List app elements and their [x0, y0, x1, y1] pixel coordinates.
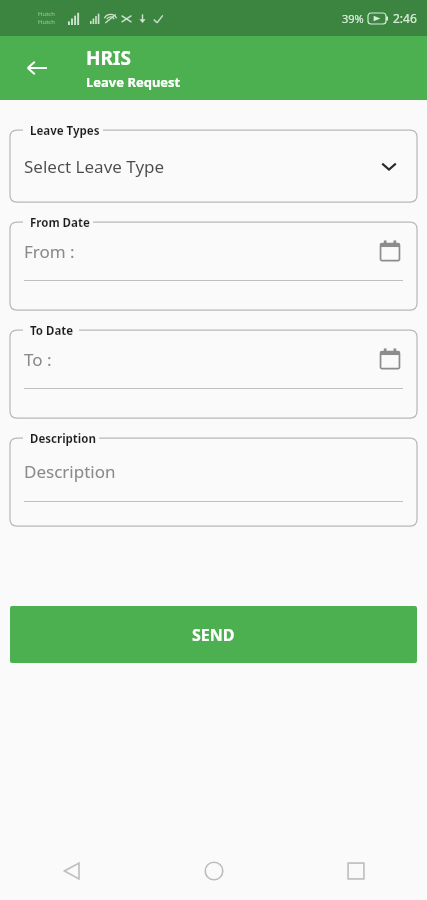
other: Pick from date [379, 240, 401, 262]
button[interactable]: Home [143, 842, 285, 900]
staticText: 39% [342, 11, 364, 26]
button[interactable]: Back [18, 49, 56, 87]
staticText: From : [24, 240, 379, 263]
staticText: Hutch [38, 10, 55, 18]
staticText: To : [24, 348, 379, 371]
button[interactable]: Recent apps [285, 842, 427, 900]
button[interactable]: Select Leave Type [10, 130, 417, 202]
other: Pick to date [379, 348, 401, 370]
staticText: To Date [30, 323, 74, 339]
staticText: Hutch [38, 18, 55, 26]
staticText: Description [30, 431, 96, 447]
button[interactable]: Back [0, 842, 143, 900]
button[interactable]: Description [10, 438, 417, 526]
staticText: From Date [30, 215, 90, 231]
staticText: Select Leave Type [24, 155, 379, 178]
staticText: SEND [192, 624, 235, 646]
staticText: HRIS [86, 45, 131, 71]
button[interactable]: To : [10, 330, 417, 418]
staticText: Description [24, 460, 116, 483]
staticText: Leave Request [86, 73, 181, 91]
other: Open leave type list [379, 156, 399, 176]
button[interactable]: SEND [10, 606, 417, 663]
button[interactable]: From : [10, 222, 417, 310]
staticText: 2:46 [393, 10, 417, 26]
staticText: Leave Types [30, 123, 100, 139]
